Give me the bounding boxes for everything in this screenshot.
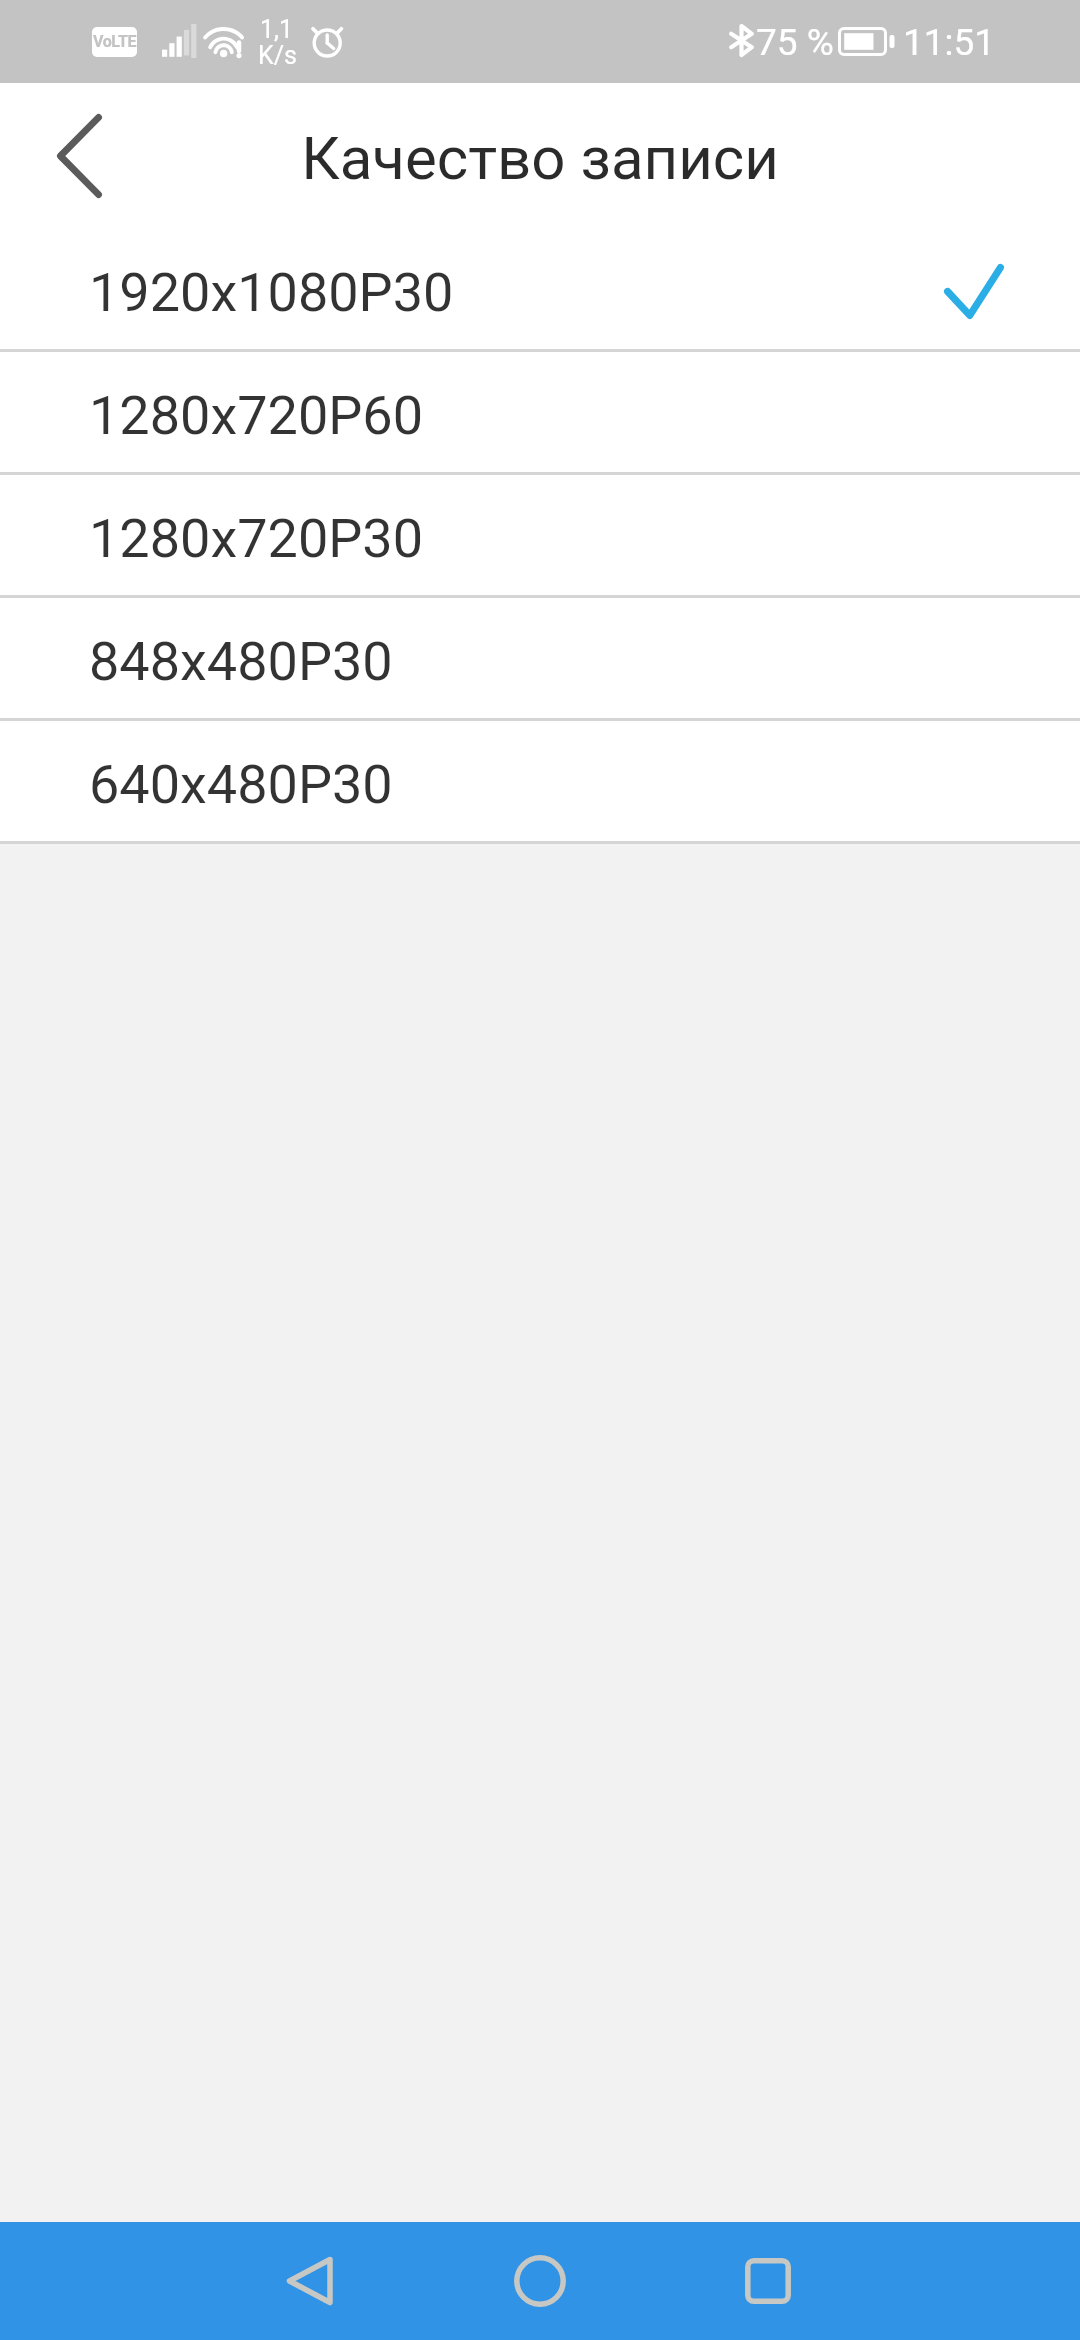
staticText: 11:51 <box>903 21 996 64</box>
button[interactable]: Recents <box>723 2222 813 2340</box>
button[interactable]: 1280x720P30 <box>0 475 1080 595</box>
button[interactable]: Back <box>29 95 130 216</box>
staticText: 1920x1080P30 <box>89 261 454 324</box>
staticText: 75 % <box>756 21 834 64</box>
button[interactable]: 1280x720P60 <box>0 352 1080 472</box>
staticText: 1280x720P30 <box>89 507 423 570</box>
button[interactable]: 640x480P30 <box>0 721 1080 841</box>
staticText: 1280x720P60 <box>89 384 423 447</box>
button[interactable]: 1920x1080P30 <box>0 229 1080 349</box>
staticText: VoLTE <box>93 32 137 51</box>
staticText: 640x480P30 <box>89 753 393 816</box>
button[interactable]: Home <box>495 2222 585 2340</box>
button[interactable]: Back <box>264 2222 354 2340</box>
button[interactable]: 848x480P30 <box>0 598 1080 718</box>
staticText: K/s <box>258 41 297 70</box>
staticText: 848x480P30 <box>89 630 393 693</box>
staticText: Качество записи <box>301 123 779 193</box>
staticText: 1,1 <box>260 15 294 44</box>
